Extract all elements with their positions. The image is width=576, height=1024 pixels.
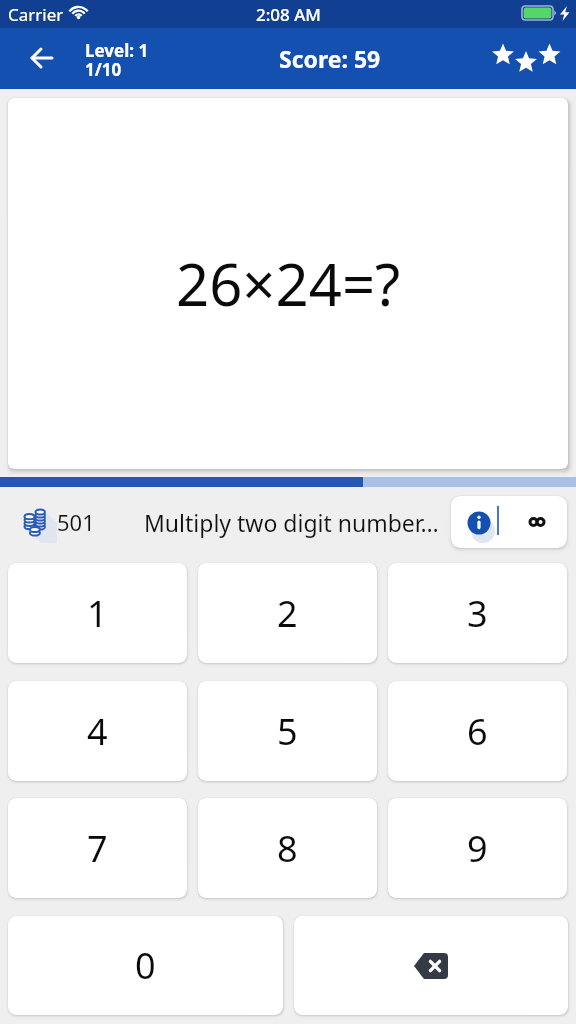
staticText: 8 — [277, 824, 298, 873]
button[interactable]: 3 — [388, 563, 567, 663]
staticText: 26×24=? — [176, 244, 401, 323]
staticText: Score: 59 — [279, 43, 381, 74]
staticText: 2:08 AM — [256, 3, 321, 26]
staticText: 5 — [277, 707, 298, 756]
staticText: Carrier — [8, 3, 64, 26]
button[interactable]: 2 — [198, 563, 377, 663]
button[interactable] — [507, 496, 567, 548]
staticText: 0 — [135, 941, 156, 990]
staticText: 6 — [467, 707, 488, 756]
staticText: Multiply two digit number… — [144, 507, 439, 538]
button[interactable]: 0 — [8, 916, 283, 1015]
button[interactable]: 9 — [388, 798, 567, 898]
staticText: 1 — [87, 589, 108, 638]
staticText: 7 — [87, 824, 108, 873]
button[interactable]: 4 — [8, 681, 187, 781]
button[interactable] — [294, 916, 568, 1015]
button[interactable]: 7 — [8, 798, 187, 898]
staticText: 4 — [87, 707, 108, 756]
staticText: 1/10 — [85, 58, 122, 79]
button[interactable] — [451, 496, 507, 548]
button[interactable] — [20, 36, 64, 80]
button[interactable]: 8 — [198, 798, 377, 898]
staticText: Level: 1 — [85, 39, 149, 60]
staticText: 2 — [277, 589, 298, 638]
button[interactable]: 1 — [8, 563, 187, 663]
button[interactable]: 6 — [388, 681, 567, 781]
staticText: 9 — [467, 824, 488, 873]
staticText: 501 — [57, 507, 95, 537]
staticText: 3 — [467, 589, 488, 638]
button[interactable]: 5 — [198, 681, 377, 781]
